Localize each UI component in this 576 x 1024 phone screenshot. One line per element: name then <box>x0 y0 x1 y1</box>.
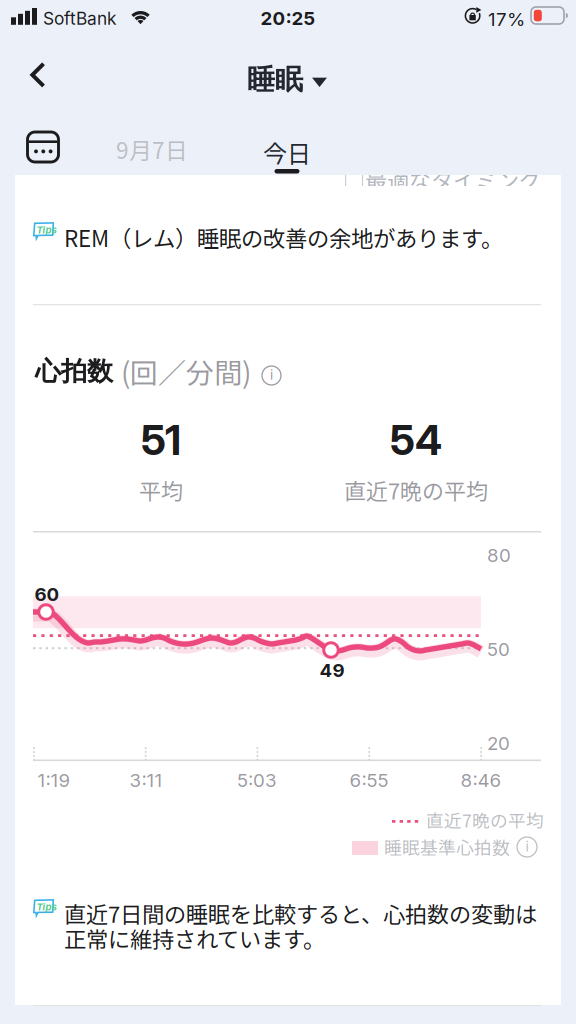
staticText: 9月7日 <box>116 133 188 165</box>
staticText: 17% <box>488 8 525 31</box>
staticText: 睡眠 <box>247 62 303 97</box>
button[interactable]: 戻る <box>5 49 69 101</box>
staticText: 今日 <box>263 135 311 170</box>
staticText: 80 <box>487 544 511 566</box>
staticText: (回／分間) <box>121 351 251 391</box>
staticText: i <box>525 838 528 855</box>
staticText: 直近7日間の睡眠を比較すると、心拍数の変動は <box>64 897 537 929</box>
staticText: 5:03 <box>237 769 277 792</box>
staticText: 51 <box>141 415 181 465</box>
staticText: 直近7晩の平均 <box>344 474 488 506</box>
button[interactable]: 9月7日 <box>106 125 198 173</box>
staticText: 49 <box>319 659 344 682</box>
button[interactable]: カレンダー <box>12 121 74 173</box>
button[interactable]: 今日 <box>251 133 323 185</box>
staticText: 20:25 <box>260 7 315 30</box>
staticText: 平均 <box>139 474 183 506</box>
staticText: Tips <box>36 901 56 913</box>
staticText: 20 <box>487 732 510 754</box>
staticText: 1:19 <box>37 769 70 792</box>
staticText: Tips <box>36 224 56 236</box>
button[interactable]: 睡眠 <box>237 54 337 105</box>
staticText: 睡眠基準心拍数 <box>384 834 510 860</box>
staticText: 正常に維持されています。 <box>64 922 325 954</box>
staticText: □最適なタイミング <box>343 163 541 195</box>
staticText: 60 <box>34 583 59 606</box>
staticText: 6:55 <box>349 769 388 792</box>
staticText: REM（レム）睡眠の改善の余地があります。 <box>64 221 503 253</box>
staticText: 3:11 <box>129 769 162 792</box>
staticText: 直近7晩の平均 <box>426 807 544 833</box>
staticText: SoftBank <box>43 8 117 29</box>
staticText: i <box>270 367 273 383</box>
staticText: 54 <box>390 415 442 465</box>
staticText: 8:46 <box>460 769 501 792</box>
staticText: 心拍数 <box>35 355 113 388</box>
staticText: 50 <box>487 638 510 660</box>
